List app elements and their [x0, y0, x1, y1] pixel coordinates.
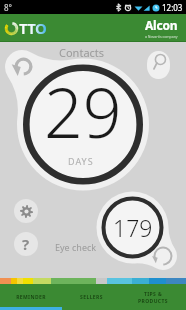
button[interactable]: Reset contacts counter: [14, 57, 33, 76]
staticText: 12:03: [162, 2, 183, 13]
button[interactable]: Help: [14, 232, 38, 256]
staticText: DAYS: [68, 155, 94, 167]
staticText: TTO: [19, 18, 47, 38]
button[interactable]: Otto home: [4, 18, 47, 38]
staticText: 179: [113, 212, 153, 243]
staticText: ?: [22, 234, 30, 254]
button[interactable]: REMINDER: [0, 284, 62, 310]
button[interactable]: TIPS & PRODUCTS: [120, 284, 186, 310]
staticText: TIPS & PRODUCTS: [138, 291, 168, 304]
staticText: 8°: [4, 2, 12, 13]
button[interactable]: Reset eye check counter: [153, 246, 173, 266]
button[interactable]: 179: [102, 197, 163, 257]
staticText: REMINDER: [16, 294, 46, 301]
button[interactable]: Settings: [14, 199, 38, 223]
staticText: 29: [44, 65, 122, 155]
staticText: a Novartis company: [145, 34, 178, 39]
staticText: Contacts: [59, 45, 105, 60]
button[interactable]: SELLERS: [62, 284, 120, 310]
staticText: Alcon: [145, 17, 178, 33]
staticText: Eye check: [55, 241, 97, 253]
button[interactable]: Search: [150, 53, 168, 71]
staticText: SELLERS: [80, 294, 103, 301]
button[interactable]: 29: [23, 65, 143, 155]
